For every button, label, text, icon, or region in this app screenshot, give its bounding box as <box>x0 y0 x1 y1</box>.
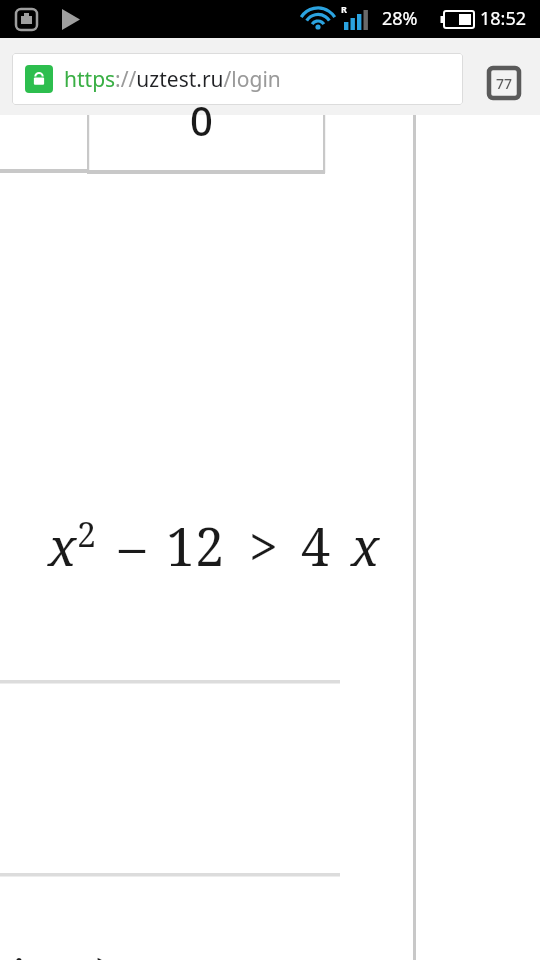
staticText: 12 <box>166 510 225 581</box>
staticText: ) <box>96 943 113 960</box>
button[interactable]: https://uztest.ru/login <box>12 53 463 105</box>
staticText: 18:52 <box>480 6 527 31</box>
staticText: https://uztest.ru/login <box>64 65 281 94</box>
button[interactable]: Tabs, 77 open <box>489 68 519 98</box>
staticText: > <box>249 510 279 581</box>
staticText: 28% <box>382 6 418 31</box>
staticText: – <box>119 510 146 581</box>
staticText: 2 <box>77 511 97 557</box>
staticText: 0 <box>190 93 213 147</box>
staticText: 77 <box>496 74 513 93</box>
staticText: x <box>351 510 380 581</box>
staticText: i <box>8 943 23 960</box>
staticText: x <box>48 510 77 581</box>
staticText: 4 <box>301 510 331 581</box>
staticText: R <box>341 3 347 15</box>
